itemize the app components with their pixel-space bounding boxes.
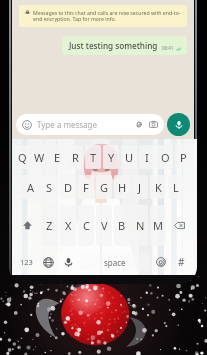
staticText: space [104, 257, 126, 268]
staticText: Messages to this chat and calls are now … [33, 9, 181, 23]
button[interactable]: T [85, 145, 101, 169]
button[interactable]: W [32, 145, 47, 169]
button[interactable]: Shift [15, 206, 39, 245]
staticText: V [101, 218, 108, 233]
staticText: J [138, 180, 142, 195]
button[interactable]: U [121, 145, 137, 169]
staticText: Y [108, 150, 115, 165]
staticText: X [65, 218, 72, 233]
staticText: R [72, 150, 79, 165]
button[interactable]: Y [103, 145, 119, 169]
button[interactable]: V [96, 205, 112, 246]
button[interactable]: S [41, 175, 58, 199]
button[interactable]: O [157, 145, 173, 169]
staticText: F [83, 180, 89, 195]
button[interactable]: Emoji [151, 249, 171, 275]
staticText: B [118, 218, 126, 233]
button[interactable]: L [168, 175, 184, 199]
staticText: T [90, 150, 97, 165]
button[interactable]: 123 [15, 249, 38, 275]
button[interactable]: Messages to this chat and calls are now … [19, 5, 187, 27]
button[interactable]: Just testing something [62, 36, 187, 55]
button[interactable]: Change language [38, 249, 58, 275]
staticText: K [155, 180, 162, 195]
button[interactable]: A [22, 175, 39, 199]
button[interactable]: Emoji [16, 114, 164, 135]
button[interactable]: Backspace [168, 206, 191, 245]
staticText: I [145, 150, 149, 165]
button[interactable]: # [171, 249, 191, 275]
staticText: U [125, 150, 134, 165]
staticText: D [64, 180, 73, 195]
button[interactable]: R [67, 145, 83, 169]
staticText: 08:41 [162, 45, 174, 51]
button[interactable]: M [150, 205, 166, 246]
button[interactable]: J [132, 175, 148, 199]
staticText: Type a message [37, 119, 98, 130]
staticText: E [54, 150, 61, 165]
other: Attach [134, 120, 143, 129]
staticText: H [118, 180, 127, 195]
button[interactable]: I [139, 145, 155, 169]
staticText: Just testing something [69, 40, 158, 51]
button[interactable]: P [175, 145, 191, 169]
other: Emoji [22, 120, 32, 130]
staticText: P [180, 150, 187, 165]
staticText: # [178, 255, 185, 269]
button[interactable]: Voice input [58, 249, 78, 275]
staticText: W [34, 150, 45, 165]
staticText: M [153, 218, 163, 233]
other: Camera [149, 120, 158, 129]
button[interactable]: D [60, 175, 76, 199]
staticText: Q [18, 150, 27, 165]
staticText: Z [46, 218, 53, 233]
button[interactable]: K [150, 175, 166, 199]
button[interactable]: Q [15, 145, 30, 169]
staticText: 123 [20, 257, 33, 267]
staticText: G [100, 180, 109, 195]
button[interactable]: H [114, 175, 130, 199]
button[interactable]: N [132, 205, 148, 246]
button[interactable]: E [49, 145, 65, 169]
staticText: S [46, 180, 53, 195]
button[interactable]: X [60, 205, 76, 246]
staticText: N [136, 218, 145, 233]
staticText: A [27, 180, 35, 195]
button[interactable]: Voice message [167, 113, 190, 136]
staticText: L [173, 180, 179, 195]
button[interactable]: Z [41, 205, 58, 246]
button[interactable]: C [78, 205, 94, 246]
button[interactable]: F [78, 175, 94, 199]
button[interactable]: G [96, 175, 112, 199]
button[interactable]: B [114, 205, 130, 246]
staticText: O [161, 150, 170, 165]
staticText: C [83, 218, 90, 233]
button[interactable]: space [80, 253, 149, 271]
